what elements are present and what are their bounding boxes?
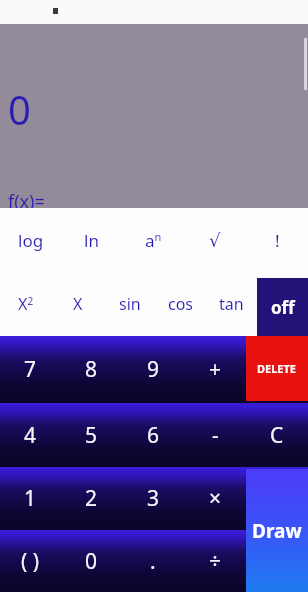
button[interactable]: 7 xyxy=(0,336,61,403)
button[interactable]: × xyxy=(184,467,246,530)
button[interactable]: sin xyxy=(104,272,155,336)
button[interactable]: 6 xyxy=(122,403,184,467)
staticText: . xyxy=(150,547,156,576)
button[interactable]: 1 xyxy=(0,467,61,530)
staticText: 0 xyxy=(85,547,98,576)
staticText: X xyxy=(73,293,83,315)
button[interactable]: ln xyxy=(61,208,122,272)
staticText: C xyxy=(270,421,284,450)
staticText: 9 xyxy=(147,355,160,384)
staticText: √ xyxy=(209,230,221,251)
staticText: 4 xyxy=(24,421,37,450)
staticText: + xyxy=(209,355,222,384)
staticText: 7 xyxy=(24,355,37,384)
staticText: - xyxy=(212,421,219,450)
staticText: 1 xyxy=(24,484,37,513)
staticText: 3 xyxy=(147,484,160,513)
staticText: off xyxy=(271,296,295,319)
button[interactable]: log xyxy=(0,208,61,272)
staticText: DELETE xyxy=(257,361,297,376)
button[interactable]: Draw xyxy=(246,469,308,592)
staticText: log xyxy=(18,229,44,252)
staticText: 2 xyxy=(85,484,98,513)
button[interactable]: . xyxy=(122,530,184,592)
button[interactable]: DELETE xyxy=(246,336,308,401)
staticText: 0 xyxy=(8,82,31,136)
button[interactable]: ! xyxy=(246,208,308,272)
staticText: ÷ xyxy=(209,547,222,576)
button[interactable]: X2 xyxy=(0,272,52,336)
staticText: 8 xyxy=(85,355,98,384)
button[interactable]: tan xyxy=(206,272,257,336)
button[interactable]: √ xyxy=(184,208,246,272)
button[interactable]: ÷ xyxy=(184,530,246,592)
staticText: tan xyxy=(219,293,244,315)
staticText: X2 xyxy=(18,293,34,315)
button[interactable]: 3 xyxy=(122,467,184,530)
button[interactable]: 5 xyxy=(61,403,122,467)
button[interactable]: 8 xyxy=(61,336,122,403)
staticText: 6 xyxy=(147,421,160,450)
button[interactable]: 4 xyxy=(0,403,61,467)
staticText: ln xyxy=(84,229,99,252)
button[interactable]: X xyxy=(52,272,104,336)
button[interactable]: ( ) xyxy=(0,530,61,592)
button[interactable]: - xyxy=(184,403,246,467)
button[interactable]: an xyxy=(122,208,184,272)
button[interactable]: 0 xyxy=(61,530,122,592)
staticText: Draw xyxy=(252,518,302,544)
staticText: sin xyxy=(119,293,141,315)
button[interactable]: cos xyxy=(155,272,206,336)
button[interactable]: off xyxy=(257,278,308,336)
button[interactable]: 2 xyxy=(61,467,122,530)
staticText: ! xyxy=(275,229,280,252)
staticText: an xyxy=(145,229,162,252)
button[interactable]: C xyxy=(246,403,308,467)
staticText: ( ) xyxy=(21,547,40,576)
staticText: 5 xyxy=(85,421,98,450)
button[interactable]: + xyxy=(184,336,246,403)
staticText: cos xyxy=(168,293,194,315)
button[interactable]: 9 xyxy=(122,336,184,403)
staticText: f(x)= xyxy=(8,189,45,214)
staticText: × xyxy=(209,484,222,513)
